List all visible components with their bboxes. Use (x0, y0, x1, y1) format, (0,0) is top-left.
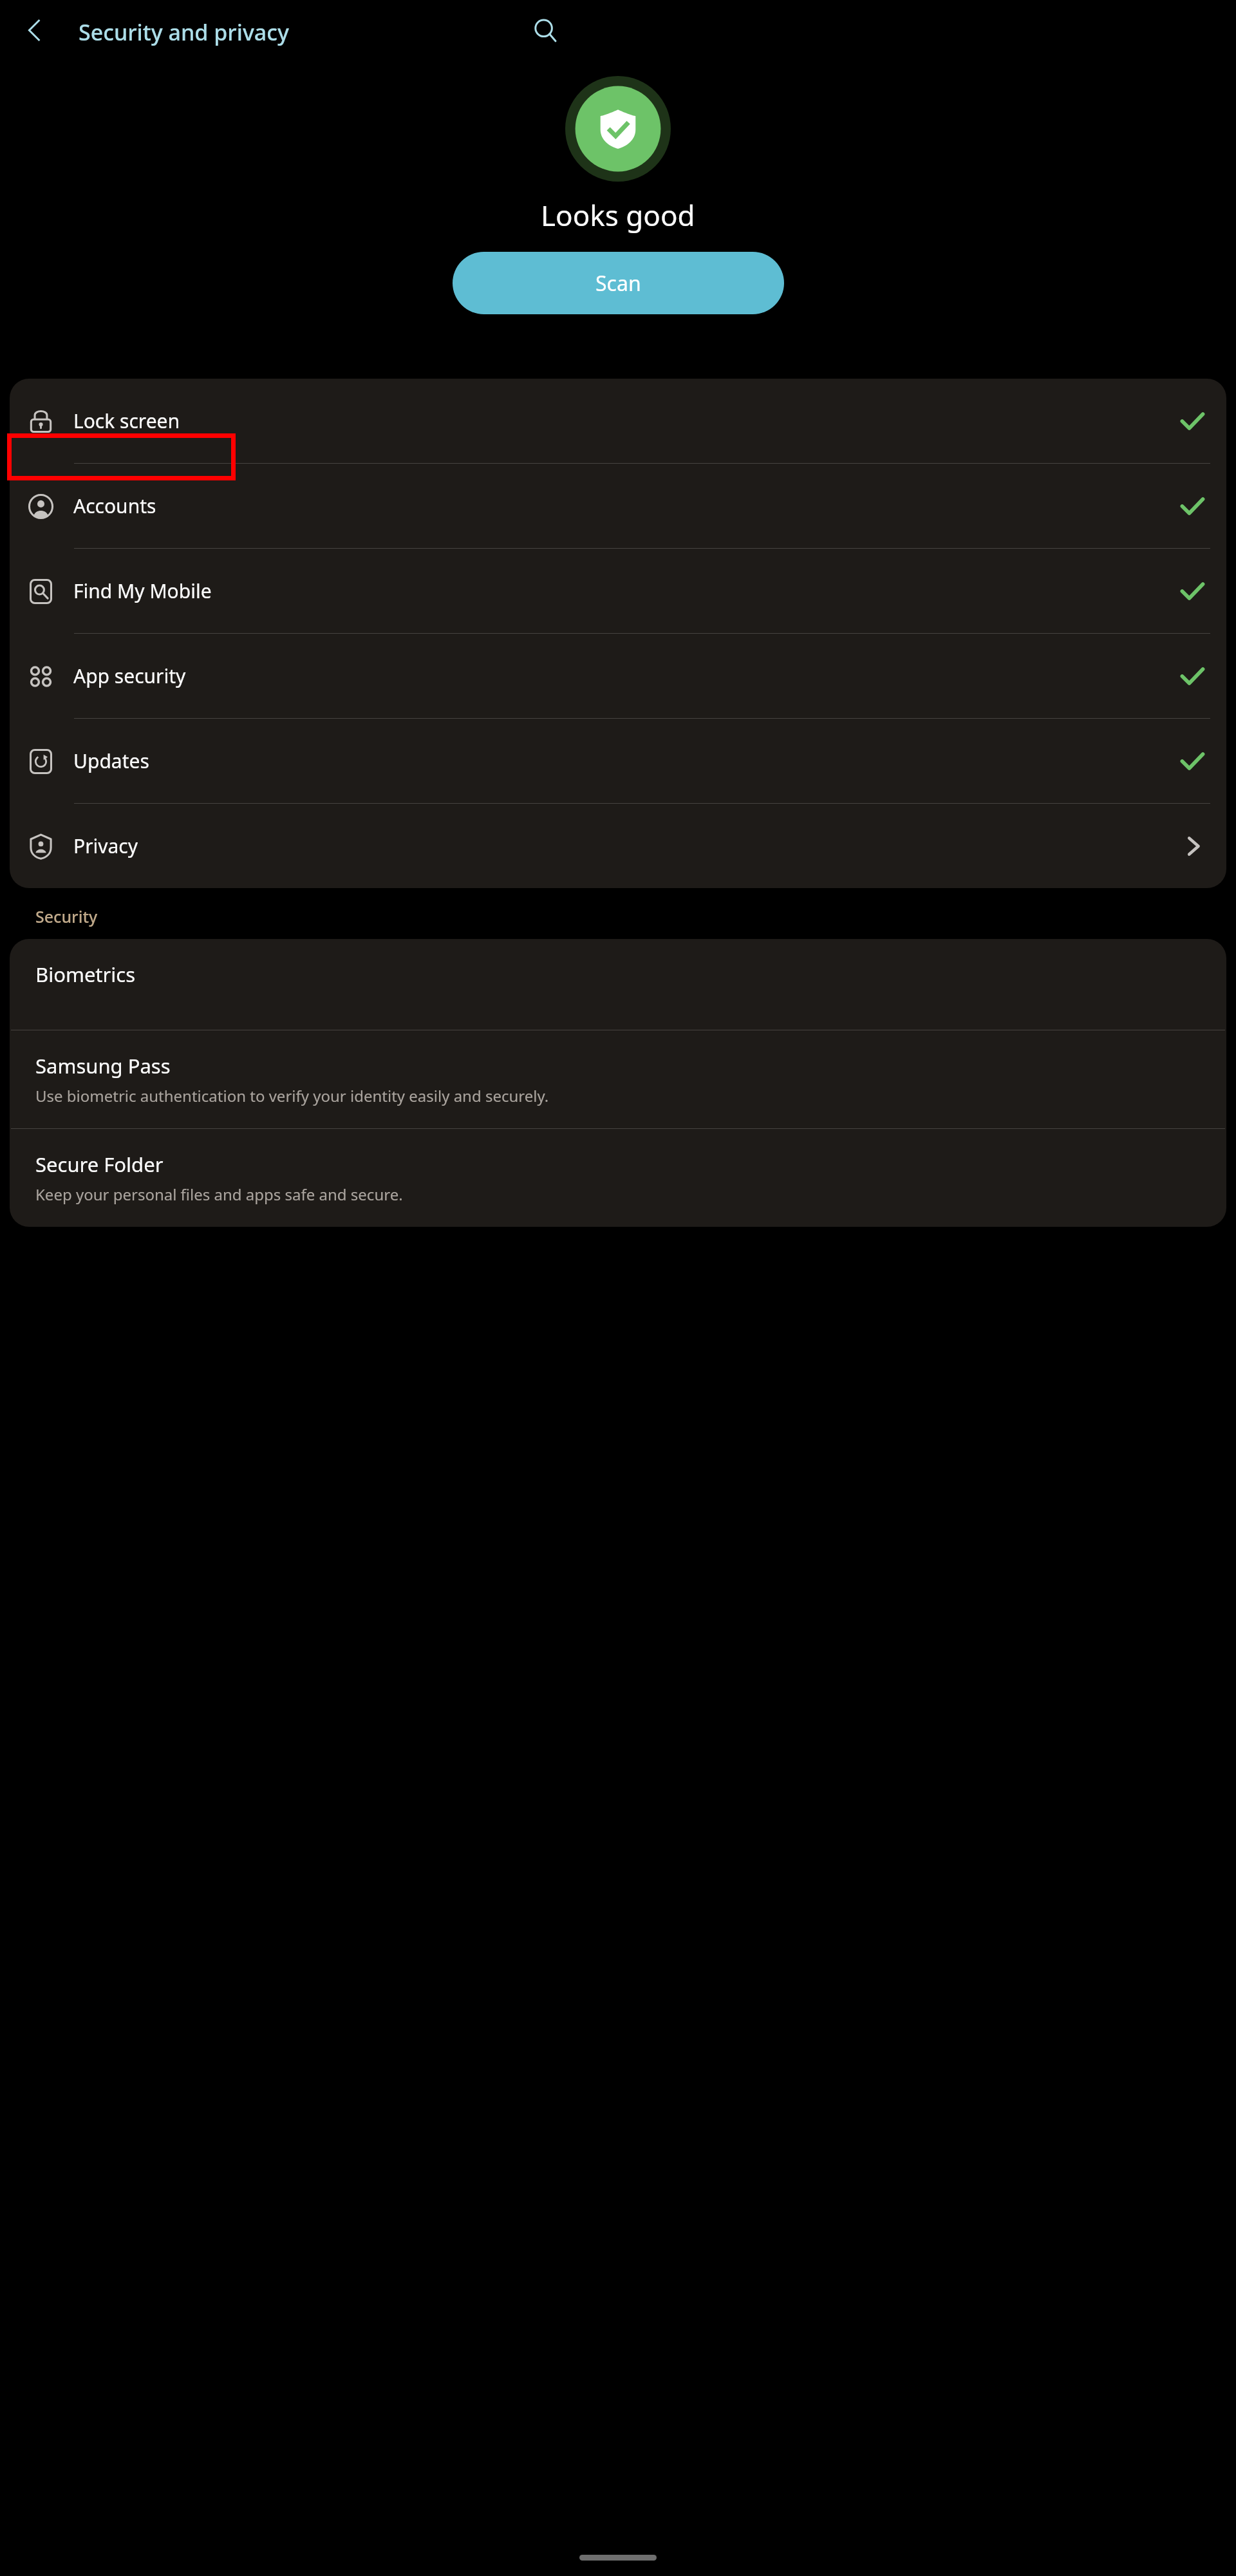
button[interactable]: Search (523, 8, 568, 53)
button[interactable]: App security (10, 634, 1226, 718)
button[interactable]: Privacy (10, 804, 1226, 888)
staticText: Lock screen (73, 408, 180, 434)
staticText: Find My Mobile (73, 578, 212, 604)
staticText: Use biometric authentication to verify y… (35, 1085, 549, 1106)
button[interactable]: Back (13, 8, 58, 53)
staticText: Samsung Pass (35, 1052, 171, 1079)
button[interactable]: Updates (10, 719, 1226, 803)
staticText: App security (73, 663, 186, 689)
button[interactable]: Lock screen (10, 379, 1226, 463)
button[interactable]: Secure Folder (10, 1129, 1226, 1227)
staticText: Updates (73, 748, 149, 774)
staticText: Security (35, 905, 98, 927)
button[interactable]: Biometrics (10, 939, 1226, 1030)
staticText: Security and privacy (79, 17, 289, 47)
staticText: Privacy (73, 833, 138, 859)
button[interactable]: Accounts (10, 464, 1226, 548)
staticText: Keep your personal files and apps safe a… (35, 1184, 403, 1205)
staticText: Biometrics (35, 961, 136, 988)
staticText: Secure Folder (35, 1151, 164, 1178)
staticText: Looks good (541, 196, 695, 234)
staticText: Accounts (73, 493, 156, 519)
button[interactable]: Samsung Pass (10, 1030, 1226, 1128)
button[interactable]: Scan (453, 252, 784, 314)
button[interactable]: Find My Mobile (10, 549, 1226, 633)
staticText: Scan (595, 269, 641, 298)
